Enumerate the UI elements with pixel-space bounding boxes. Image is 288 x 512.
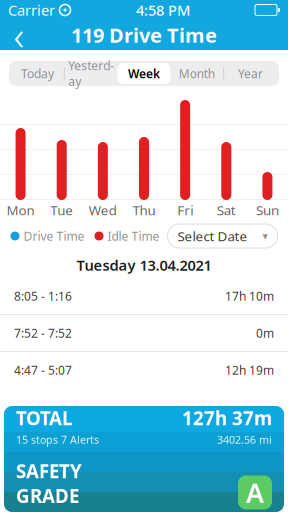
staticText: TOTAL: [16, 406, 72, 430]
staticText: 12h 19m: [225, 362, 274, 378]
staticText: Yesterday: [68, 58, 114, 89]
staticText: Fri: [177, 201, 193, 219]
staticText: Sat: [217, 201, 236, 219]
button[interactable]: Yesterday: [65, 63, 118, 84]
staticText: Mon: [7, 201, 35, 219]
staticText: 0m: [256, 325, 274, 341]
staticText: 4:47 - 5:07: [14, 362, 72, 378]
staticText: Carrier: [8, 0, 55, 20]
staticText: Tuesday 13.04.2021: [76, 255, 211, 275]
button[interactable]: Year: [224, 63, 277, 84]
staticText: A: [246, 475, 264, 510]
staticText: Select Date: [177, 227, 247, 245]
staticText: 15 stops 7 Alerts: [16, 432, 99, 447]
staticText: Drive Time: [23, 228, 84, 244]
button[interactable]: Back: [0, 20, 38, 50]
staticText: Thu: [132, 201, 155, 219]
staticText: Tue: [50, 201, 73, 219]
staticText: 8:05 - 1:16: [14, 288, 72, 304]
staticText: Today: [21, 65, 54, 81]
staticText: Sun: [256, 201, 279, 219]
staticText: 4:58 PM: [136, 0, 190, 20]
staticText: Idle Time: [107, 228, 159, 244]
staticText: ‹: [13, 8, 24, 61]
staticText: 17h 10m: [225, 288, 274, 304]
staticText: 3402.56 mi: [217, 432, 272, 447]
button[interactable]: 4:47 - 5:07: [0, 352, 288, 388]
staticText: Week: [128, 65, 160, 81]
button[interactable]: Month: [170, 63, 223, 84]
staticText: ▾: [262, 230, 267, 242]
button[interactable]: Today: [11, 63, 64, 84]
staticText: 119 Drive Time: [71, 22, 217, 48]
staticText: SAFETY GRADE: [16, 459, 82, 508]
staticText: 7:52 - 7:52: [14, 325, 72, 341]
staticText: Year: [238, 65, 263, 81]
staticText: Wed: [89, 201, 117, 219]
button[interactable]: Select Date: [167, 224, 277, 248]
button[interactable]: Week: [118, 63, 170, 84]
button[interactable]: 8:05 - 1:16: [0, 278, 288, 315]
staticText: Month: [179, 65, 215, 81]
staticText: 127h 37m: [182, 406, 272, 430]
button[interactable]: 7:52 - 7:52: [0, 315, 288, 352]
